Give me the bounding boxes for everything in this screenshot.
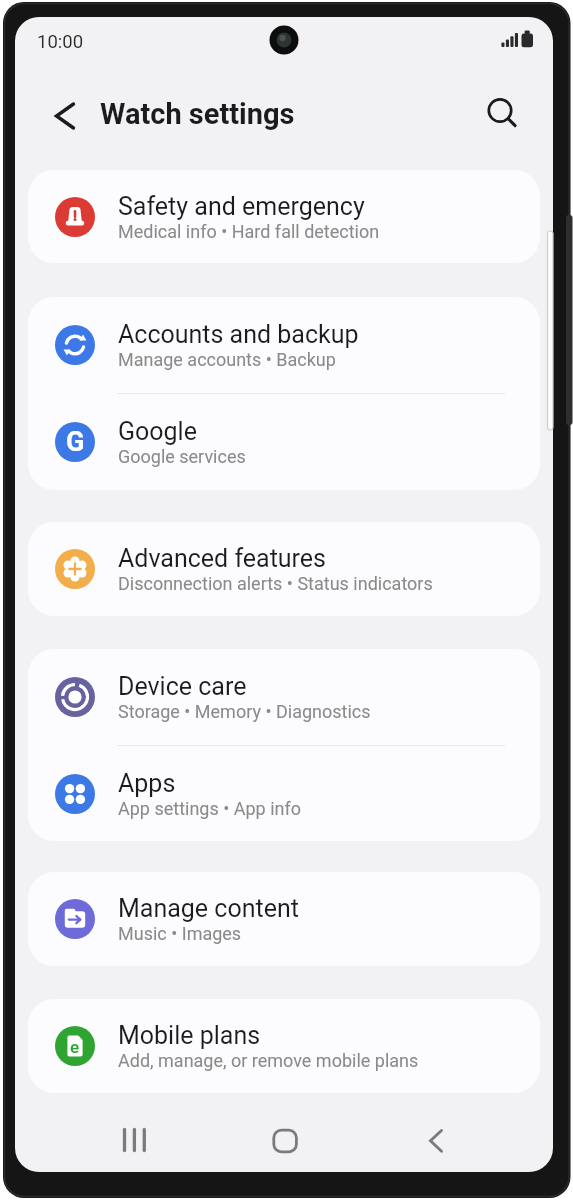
button[interactable]: Safety and emergency [28, 170, 540, 263]
staticText: Accounts and backup [118, 320, 359, 349]
staticText: Google services [118, 446, 246, 467]
button[interactable] [100, 1112, 172, 1170]
staticText: App settings • App info [118, 798, 302, 819]
button[interactable] [42, 88, 92, 140]
button[interactable]: Apps [28, 746, 540, 841]
staticText: Google [118, 417, 197, 446]
staticText: Add, manage, or remove mobile plans [118, 1050, 419, 1071]
staticText: Storage • Memory • Diagnostics [118, 701, 371, 722]
staticText: Music • Images [118, 923, 242, 944]
staticText: Manage content [118, 894, 299, 923]
button[interactable]: e [28, 999, 540, 1093]
staticText: Watch settings [100, 97, 295, 131]
staticText: Safety and emergency [118, 192, 365, 221]
staticText: 10:00 [37, 31, 84, 53]
staticText: G [66, 426, 85, 458]
staticText: Apps [118, 769, 176, 798]
button[interactable]: Accounts and backup [28, 297, 540, 393]
staticText: Manage accounts • Backup [118, 349, 336, 370]
button[interactable]: Device care [28, 649, 540, 745]
staticText: Advanced features [118, 544, 326, 573]
staticText: e [70, 1037, 80, 1057]
button[interactable]: Advanced features [28, 522, 540, 616]
staticText: Device care [118, 672, 247, 701]
staticText: Mobile plans [118, 1021, 261, 1050]
button[interactable]: G [28, 394, 540, 490]
staticText: Medical info • Hard fall detection [118, 221, 380, 242]
button[interactable]: Manage content [28, 872, 540, 966]
staticText: Disconnection alerts • Status indicators [118, 573, 433, 594]
button[interactable] [249, 1112, 321, 1170]
button[interactable] [474, 85, 524, 135]
button[interactable] [400, 1112, 472, 1170]
